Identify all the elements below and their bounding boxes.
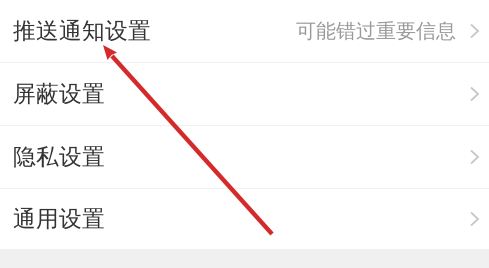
button[interactable]: 隐私设置 bbox=[0, 126, 489, 188]
staticText: 隐私设置 bbox=[13, 143, 105, 171]
staticText: 通用设置 bbox=[13, 205, 105, 233]
button[interactable]: 通用设置 bbox=[0, 189, 489, 249]
staticText: 推送通知设置 bbox=[13, 17, 151, 45]
staticText: 屏蔽设置 bbox=[13, 80, 105, 108]
staticText: 可能错过重要信息 bbox=[296, 19, 456, 43]
button[interactable]: 屏蔽设置 bbox=[0, 63, 489, 125]
button[interactable]: 推送通知设置 bbox=[0, 0, 489, 62]
